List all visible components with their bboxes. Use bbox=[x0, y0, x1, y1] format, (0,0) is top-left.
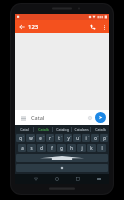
button[interactable]: j bbox=[77, 144, 86, 152]
button[interactable]: f bbox=[47, 144, 56, 152]
button[interactable]: a bbox=[18, 144, 26, 152]
staticText: Català bbox=[95, 127, 106, 132]
staticText: y bbox=[67, 135, 70, 141]
staticText: h bbox=[70, 145, 73, 151]
staticText: l bbox=[101, 145, 103, 151]
button[interactable]: Catal bbox=[15, 125, 33, 133]
button[interactable]: h bbox=[67, 144, 76, 152]
button[interactable]: i bbox=[82, 134, 90, 142]
button[interactable]: Menu bbox=[18, 113, 28, 123]
button[interactable]: Català bbox=[91, 125, 109, 133]
staticText: o bbox=[94, 135, 97, 141]
staticText: q bbox=[19, 135, 22, 141]
button[interactable]: u bbox=[73, 134, 81, 142]
staticText: 1 bbox=[23, 134, 25, 137]
button[interactable]: Catalog bbox=[53, 125, 71, 133]
staticText: u bbox=[76, 135, 79, 141]
button[interactable]: Clear bbox=[85, 113, 94, 122]
button[interactable]: r bbox=[46, 134, 54, 142]
staticText: d bbox=[40, 145, 43, 151]
button[interactable]: More options bbox=[99, 22, 109, 32]
staticText: 3 bbox=[43, 134, 45, 137]
button[interactable]: Català bbox=[34, 125, 52, 133]
button[interactable]: t bbox=[55, 134, 63, 142]
staticText: 7 bbox=[79, 134, 81, 137]
staticText: Catalog bbox=[56, 127, 69, 132]
staticText: 0 bbox=[106, 134, 108, 137]
staticText: a bbox=[21, 145, 24, 151]
staticText: g bbox=[60, 145, 63, 151]
staticText: w bbox=[29, 135, 33, 141]
staticText: s bbox=[30, 145, 33, 151]
button[interactable]: Symbols bbox=[16, 164, 108, 172]
staticText: 123 bbox=[28, 23, 39, 31]
button[interactable]: o bbox=[91, 134, 99, 142]
button[interactable]: Back bbox=[25, 174, 46, 184]
staticText: 4 bbox=[52, 134, 54, 137]
staticText: 6 bbox=[70, 134, 72, 137]
staticText: 5 bbox=[61, 134, 63, 137]
staticText: 2 bbox=[33, 134, 35, 137]
staticText: k bbox=[90, 145, 93, 151]
button[interactable]: Home bbox=[46, 174, 67, 184]
staticText: i bbox=[85, 135, 87, 141]
staticText: Catal bbox=[20, 127, 29, 132]
button[interactable]: d bbox=[37, 144, 46, 152]
staticText: j bbox=[81, 145, 83, 151]
staticText: Catalans bbox=[74, 127, 89, 132]
button[interactable]: Call bbox=[86, 20, 99, 33]
button[interactable]: Back bbox=[15, 20, 28, 33]
button[interactable]: k bbox=[87, 144, 96, 152]
button[interactable]: p bbox=[100, 134, 108, 142]
staticText: Catal bbox=[31, 114, 85, 122]
button[interactable]: q bbox=[16, 134, 25, 142]
staticText: p bbox=[103, 135, 106, 141]
button[interactable]: w bbox=[26, 134, 35, 142]
staticText: Català bbox=[38, 127, 49, 132]
button[interactable]: g bbox=[57, 144, 66, 152]
button[interactable]: Recents bbox=[67, 174, 88, 184]
staticText: r bbox=[49, 135, 51, 141]
staticText: e bbox=[39, 135, 42, 141]
staticText: f bbox=[51, 145, 53, 151]
staticText: 8 bbox=[88, 134, 90, 137]
button[interactable]: s bbox=[27, 144, 36, 152]
button[interactable]: e bbox=[36, 134, 45, 142]
button[interactable]: Change keyboard bbox=[88, 174, 109, 184]
staticText: t bbox=[58, 135, 60, 141]
button[interactable]: y bbox=[64, 134, 72, 142]
staticText: 9 bbox=[97, 134, 99, 137]
button[interactable]: Shift bbox=[16, 154, 108, 162]
button[interactable]: Catalans bbox=[72, 125, 90, 133]
button[interactable]: Send bbox=[95, 112, 106, 123]
button[interactable]: l bbox=[97, 144, 106, 152]
